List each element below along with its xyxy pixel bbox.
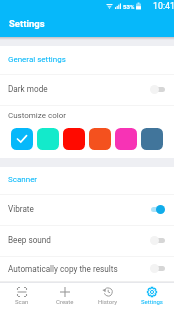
staticText: Scanner	[8, 175, 38, 184]
button[interactable]: Toggle off	[150, 85, 165, 94]
button[interactable]: Toggle off	[150, 236, 165, 245]
button[interactable]: Vibrate	[0, 195, 174, 225]
staticText: Automatically copy the results	[8, 264, 150, 274]
button[interactable]: Color option 6	[141, 128, 163, 150]
staticText: Create	[56, 298, 74, 305]
button[interactable]: Automatically copy the results	[0, 257, 174, 282]
button[interactable]: Color option 2	[37, 128, 59, 150]
button[interactable]: Beep sound	[0, 226, 174, 256]
staticText: Vibrate	[8, 204, 150, 214]
button[interactable]: Toggle off	[150, 264, 165, 273]
button[interactable]: Toggle on	[150, 205, 165, 214]
button[interactable]: Scan	[0, 283, 43, 310]
staticText: Scan	[15, 298, 29, 305]
button[interactable]: History	[86, 283, 130, 310]
button[interactable]: Color option 5	[115, 128, 137, 150]
button[interactable]: Color option 4	[89, 128, 111, 150]
button[interactable]: Color option 1	[11, 128, 33, 150]
staticText: 10:41	[153, 1, 174, 11]
button[interactable]: Create	[43, 283, 86, 310]
staticText: Dark mode	[8, 84, 150, 94]
staticText: General settings	[8, 55, 66, 64]
button[interactable]: Dark mode	[0, 75, 174, 105]
staticText: Settings	[9, 18, 45, 29]
staticText: Settings	[141, 298, 163, 305]
staticText: History	[98, 298, 118, 305]
staticText: Beep sound	[8, 235, 150, 245]
button[interactable]: Color option 3	[63, 128, 85, 150]
staticText: 53%	[123, 3, 135, 10]
button[interactable]: Settings	[130, 283, 174, 310]
staticText: Customize color	[8, 111, 66, 120]
